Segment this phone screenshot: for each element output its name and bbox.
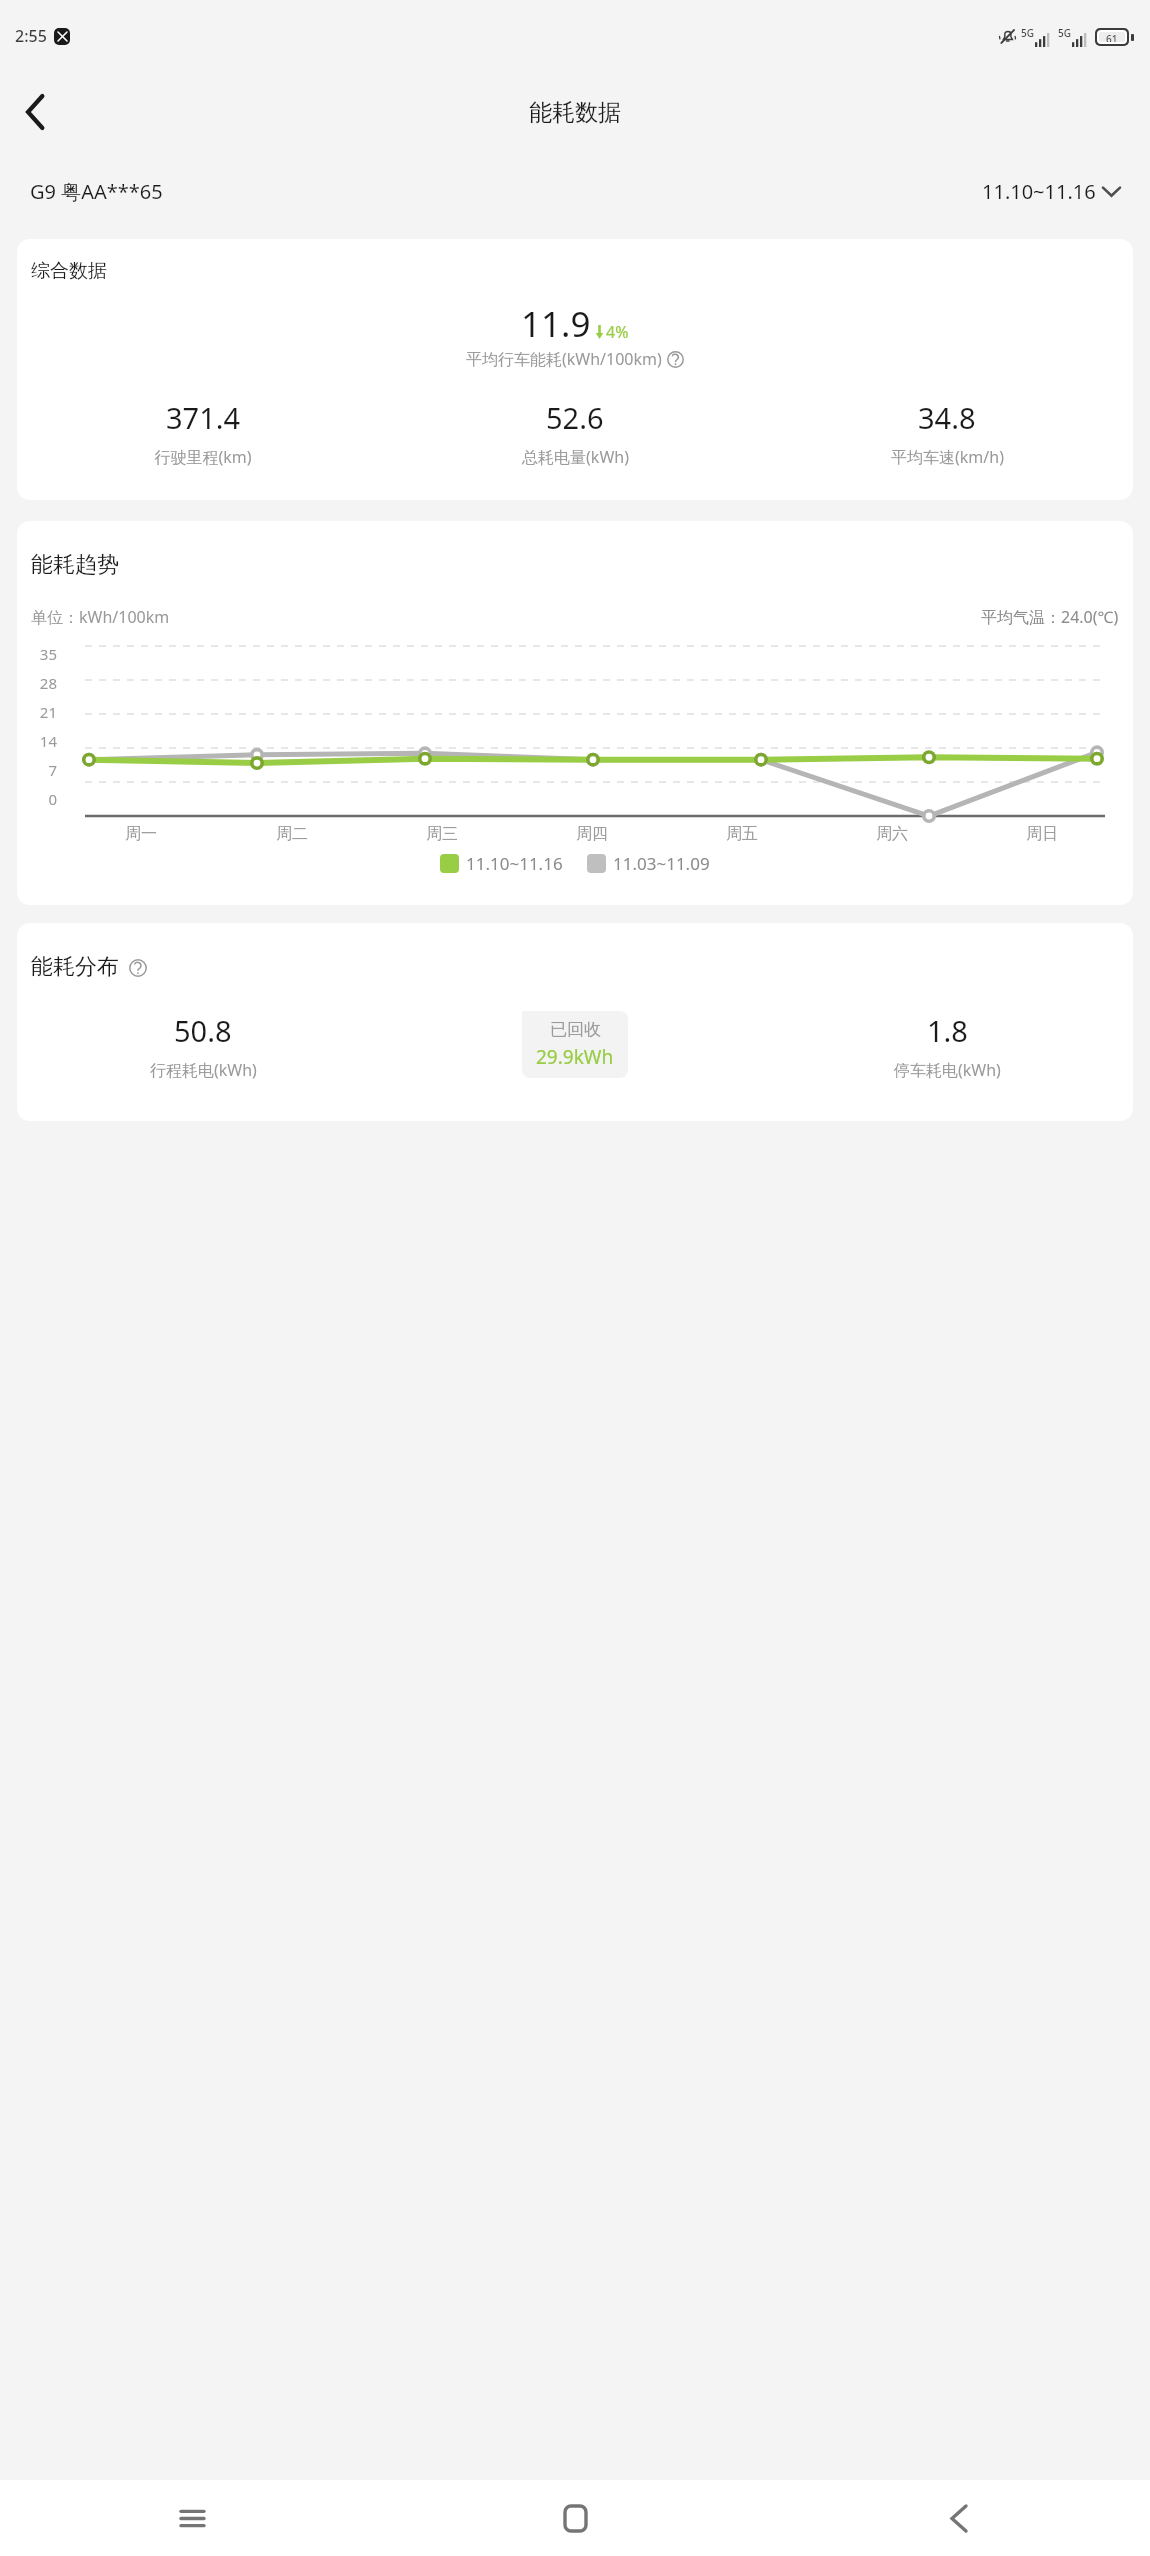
staticText: 35 [17,644,57,664]
staticText: 34.8 [918,398,976,437]
staticText: 周四 [576,824,608,844]
button[interactable]: 11.10~11.16 [982,178,1120,205]
staticText: 周五 [726,824,758,844]
staticText: 2:55 [15,25,47,47]
staticText: G9 粤AA***65 [30,178,163,205]
staticText: 4% [606,321,629,343]
staticText: 1.8 [927,1011,968,1050]
staticText: 总耗电量(kWh) [522,446,629,468]
staticText: 61 [1106,32,1118,42]
staticText: 14 [17,731,57,751]
staticText: 11.10~11.16 [466,852,563,875]
staticText: 5G [1058,26,1071,40]
staticText: 周二 [276,824,308,844]
staticText: 21 [17,702,57,722]
staticText: 50.8 [174,1011,232,1050]
button[interactable]: 11.10~11.16 [440,852,563,875]
button[interactable]: Back [767,2480,1150,2556]
staticText: 行程耗电(kWh) [150,1059,257,1081]
button[interactable]: Home [384,2480,767,2556]
staticText: 周日 [1026,824,1058,844]
staticText: 28 [17,673,57,693]
staticText: 52.6 [546,398,604,437]
staticText: 11.10~11.16 [982,178,1096,205]
staticText: 周六 [876,824,908,844]
staticText: 行驶里程(km) [154,446,252,468]
staticText: 能耗趋势 [31,551,119,579]
staticText: 29.9kWh [536,1044,614,1070]
staticText: 371.4 [166,398,241,437]
button[interactable]: Recent apps [0,2480,384,2556]
staticText: 5G [1021,26,1034,40]
staticText: 0 [17,789,57,809]
button[interactable]: 11.03~11.09 [587,852,710,875]
staticText: 平均行车能耗(kWh/100km) [466,348,662,370]
staticText: 平均车速(km/h) [891,446,1004,468]
staticText: 平均气温：24.0(℃) [981,606,1119,628]
staticText: 能耗分布 [31,953,119,981]
button[interactable]: 关于能耗分布 [127,957,148,978]
staticText: 已回收 [550,1019,601,1040]
staticText: 停车耗电(kWh) [894,1059,1001,1081]
staticText: 7 [17,760,57,780]
staticText: 11.03~11.09 [613,852,710,875]
staticText: 11.9 [521,300,591,348]
button[interactable]: 关于平均行车能耗 [666,350,685,369]
button[interactable]: Back [8,84,64,140]
staticText: 周一 [125,824,157,844]
staticText: 综合数据 [31,259,107,283]
staticText: 单位：kWh/100km [31,606,170,628]
staticText: 能耗数据 [529,98,621,127]
staticText: 周三 [426,824,458,844]
